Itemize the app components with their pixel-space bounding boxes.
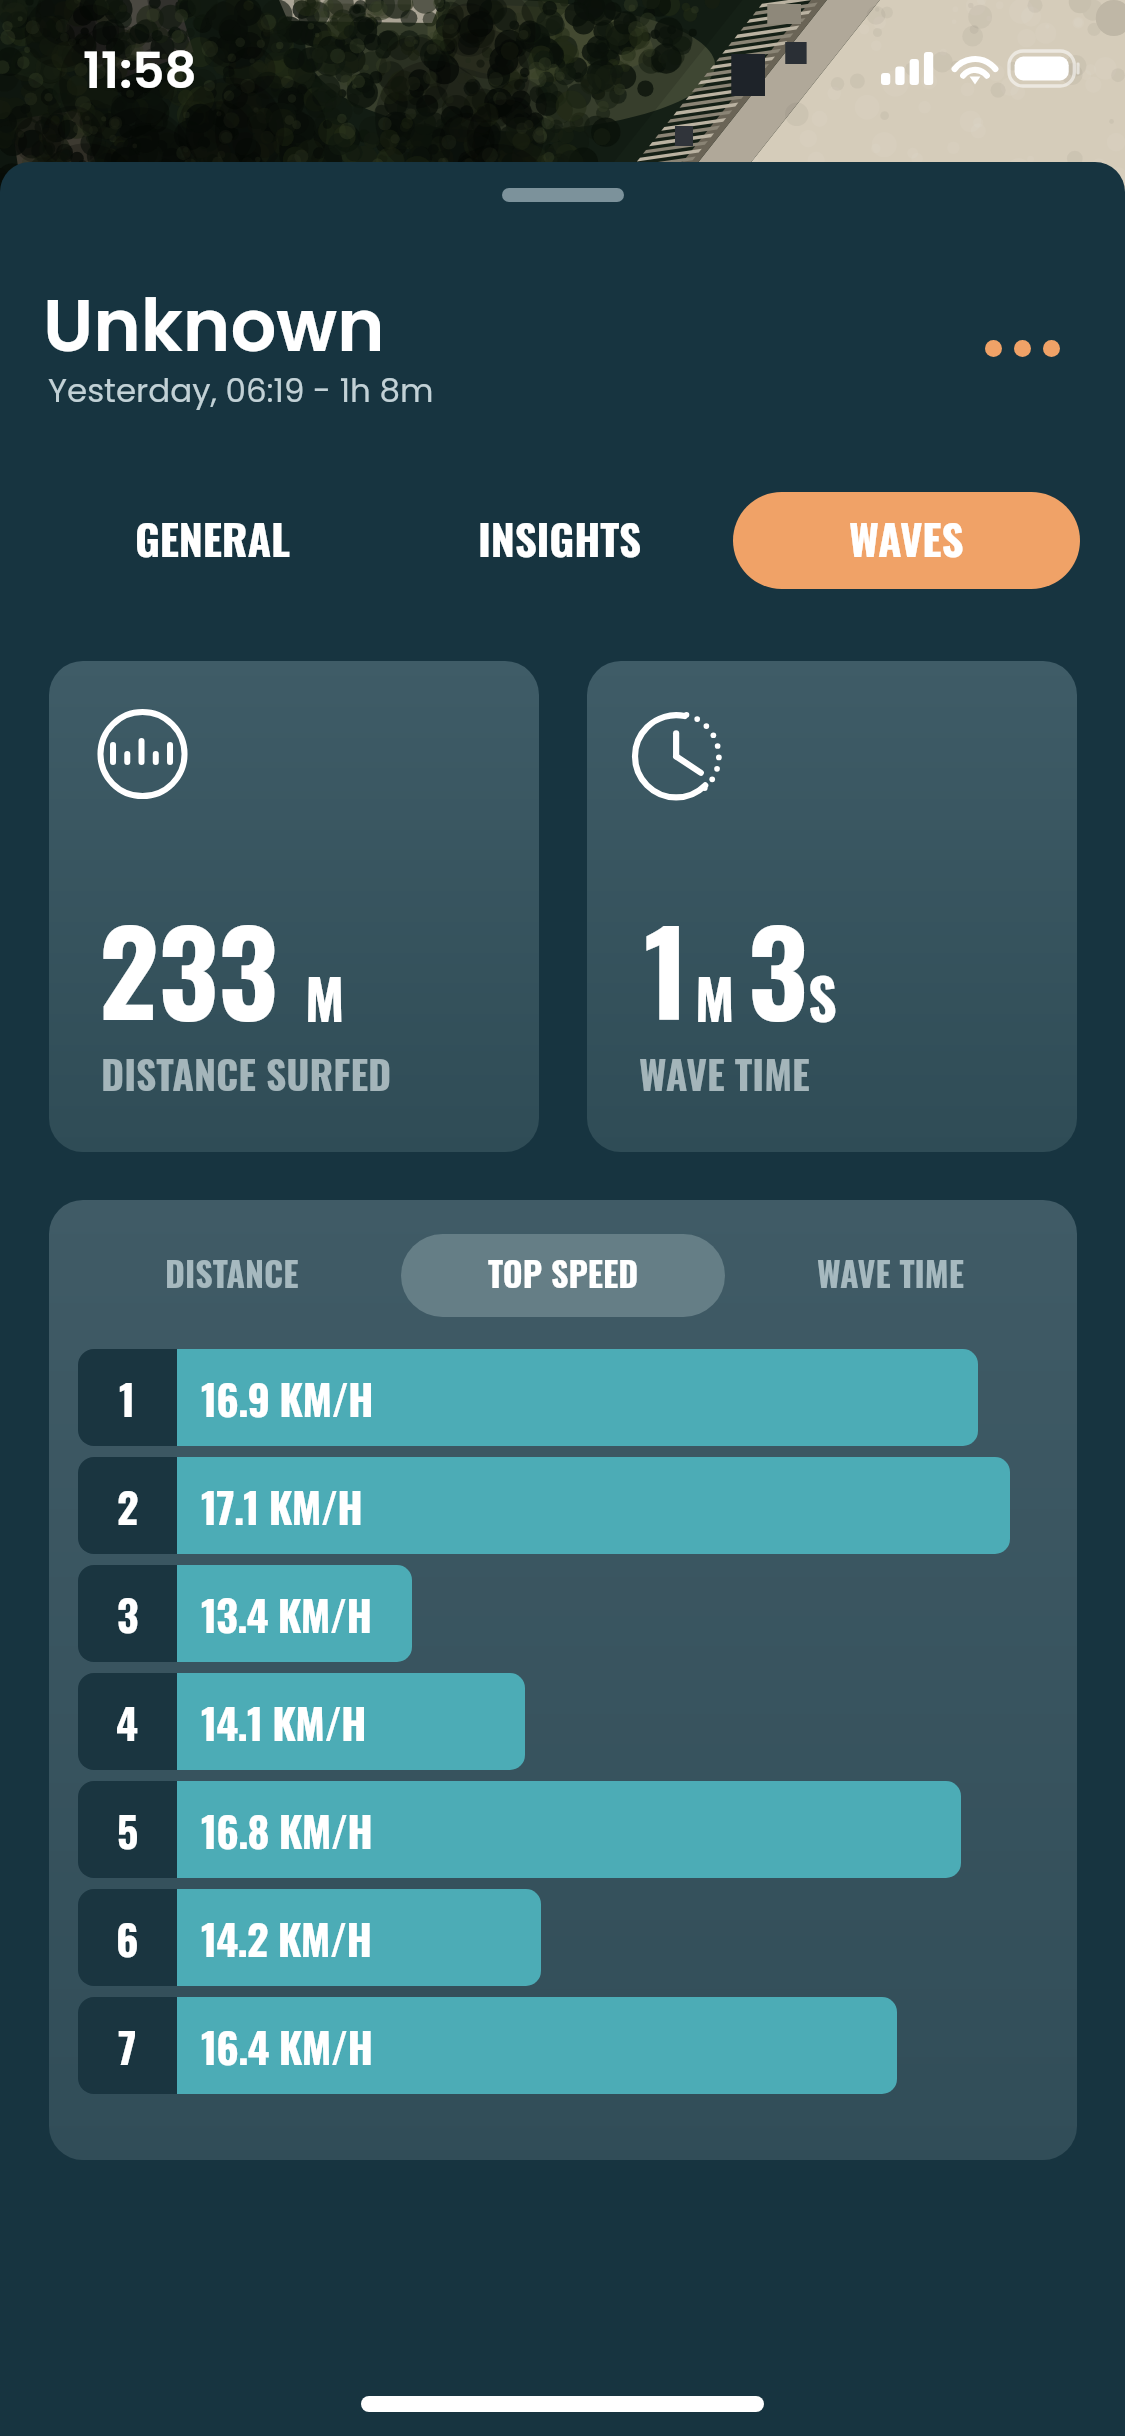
staticText: M	[695, 955, 735, 1038]
staticText: 11:58	[83, 36, 197, 106]
button[interactable]: WAVE TIME	[807, 1234, 974, 1317]
staticText: WAVE TIME	[639, 1044, 810, 1103]
button[interactable]: WAVES	[733, 492, 1080, 589]
staticText: S	[808, 955, 837, 1038]
button[interactable]: 1	[587, 661, 1077, 1152]
staticText: WAVES	[849, 506, 964, 570]
button[interactable]: 1	[78, 1349, 1010, 1446]
button[interactable]: 4	[78, 1673, 1010, 1770]
button[interactable]: More options	[957, 303, 1087, 393]
button[interactable]: 5	[78, 1781, 1010, 1878]
staticText: Yesterday, 06:19 - 1h 8m	[48, 368, 434, 414]
staticText: 16.8 KM/H	[201, 1799, 373, 1861]
staticText: 14.1 KM/H	[201, 1691, 366, 1753]
staticText: 2	[117, 1475, 139, 1537]
staticText: 7	[118, 2015, 137, 2077]
button[interactable]: 2	[78, 1457, 1010, 1554]
staticText: WAVE TIME	[817, 1247, 964, 1297]
button[interactable]: DISTANCE	[155, 1234, 309, 1317]
button[interactable]: TOP SPEED	[401, 1234, 725, 1317]
staticText: 1	[644, 882, 689, 1054]
staticText: 4	[116, 1691, 139, 1753]
staticText: 3	[748, 882, 808, 1054]
staticText: DISTANCE SURFED	[101, 1044, 392, 1103]
staticText: 1	[119, 1367, 136, 1429]
button[interactable]: INSIGHTS	[386, 492, 733, 589]
staticText: 3	[117, 1583, 139, 1645]
button[interactable]: 6	[78, 1889, 1010, 1986]
staticText: 233	[99, 882, 278, 1054]
staticText: INSIGHTS	[478, 506, 642, 570]
staticText: 14.2 KM/H	[201, 1907, 372, 1969]
staticText: 5	[117, 1799, 139, 1861]
staticText: TOP SPEED	[488, 1247, 639, 1297]
button[interactable]: 233	[49, 661, 539, 1152]
staticText: 17.1 KM/H	[201, 1475, 363, 1537]
staticText: 6	[116, 1907, 139, 1969]
staticText: GENERAL	[135, 506, 290, 570]
staticText: 16.4 KM/H	[201, 2015, 373, 2077]
staticText: Unknown	[43, 275, 385, 376]
button[interactable]: GENERAL	[38, 492, 386, 589]
staticText: M	[305, 955, 345, 1038]
staticText: 16.9 KM/H	[201, 1367, 373, 1429]
button[interactable]: 7	[78, 1997, 1010, 2094]
button[interactable]: 3	[78, 1565, 1010, 1662]
staticText: 13.4 KM/H	[201, 1583, 372, 1645]
staticText: DISTANCE	[165, 1247, 299, 1297]
